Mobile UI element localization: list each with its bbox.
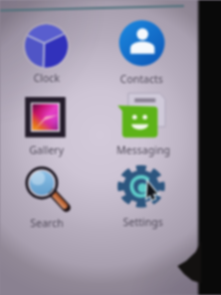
button[interactable]: Clock [16, 16, 76, 78]
button[interactable]: Settings [111, 156, 171, 218]
button[interactable]: Messaging [110, 85, 170, 147]
button[interactable]: Contacts [112, 13, 172, 75]
button[interactable]: Gallery [15, 87, 75, 149]
button[interactable]: Search [16, 156, 76, 218]
